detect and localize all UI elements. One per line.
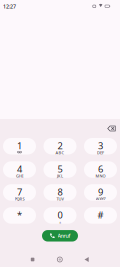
staticText: 3 <box>98 139 103 152</box>
staticText: 2 <box>57 139 62 152</box>
staticText: + <box>59 219 61 224</box>
button[interactable]: Home <box>49 252 71 266</box>
staticText: TUV <box>56 196 63 201</box>
button[interactable]: 2 <box>43 138 76 154</box>
button[interactable]: 5 <box>43 161 76 178</box>
button[interactable]: 6 <box>84 161 117 178</box>
button[interactable]: 9 <box>84 184 117 201</box>
staticText: 5 <box>57 163 62 175</box>
button[interactable]: 0 <box>43 207 76 224</box>
staticText: 0 <box>57 209 62 221</box>
staticText: DEF <box>97 150 104 155</box>
button[interactable]: 1 <box>3 138 36 154</box>
staticText: 9 <box>98 186 103 198</box>
button[interactable]: * <box>3 207 36 224</box>
button[interactable]: Backspace <box>104 122 118 134</box>
button[interactable]: 4 <box>3 161 36 178</box>
button[interactable]: Back <box>76 252 98 266</box>
staticText: PQRS <box>14 196 24 201</box>
button[interactable]: Anruf <box>42 230 78 242</box>
staticText: 8 <box>57 186 62 198</box>
staticText: ABC <box>55 150 64 155</box>
staticText: # <box>97 209 103 221</box>
staticText: MNO <box>95 173 105 179</box>
button[interactable]: # <box>84 207 117 224</box>
staticText: 12:27 <box>3 3 16 10</box>
button[interactable]: 7 <box>3 184 36 201</box>
button[interactable]: Recents <box>22 252 44 266</box>
staticText: WXYZ <box>95 196 105 201</box>
staticText: * <box>17 209 22 221</box>
button[interactable]: 8 <box>43 184 76 201</box>
staticText: Anruf <box>57 232 70 239</box>
staticText: JKL <box>57 173 63 179</box>
staticText: 7 <box>17 186 22 198</box>
staticText: GHI <box>16 173 23 179</box>
button[interactable]: 3 <box>84 138 117 154</box>
staticText: 1 <box>17 139 22 152</box>
staticText: 6 <box>98 163 103 175</box>
staticText: 4 <box>17 163 22 175</box>
